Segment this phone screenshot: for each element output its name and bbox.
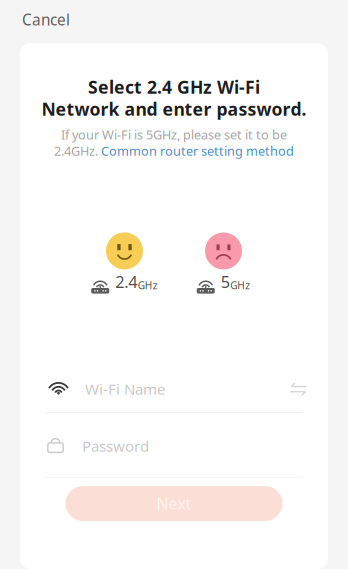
staticText: Common router setting method <box>101 142 294 159</box>
staticText: Network and enter password. <box>41 97 306 121</box>
staticText: Next <box>156 493 191 514</box>
staticText: GHz <box>138 278 158 292</box>
button[interactable]: Next <box>65 486 282 521</box>
staticText: Password <box>82 436 149 456</box>
staticText: GHz <box>230 278 250 292</box>
button[interactable]: Switch network <box>278 374 328 405</box>
button[interactable]: Common router setting method <box>101 142 294 159</box>
staticText: Cancel <box>22 9 70 30</box>
staticText: 2.4 <box>115 270 137 293</box>
staticText: Wi-Fi Name <box>85 379 165 399</box>
button[interactable]: Cancel <box>0 3 86 40</box>
staticText: If your Wi-Fi is 5GHz, please set it to … <box>61 126 287 143</box>
staticText: Select 2.4 GHz Wi-Fi <box>88 75 260 99</box>
staticText: 2.4GHz. <box>54 142 98 159</box>
staticText: 5 <box>221 270 230 293</box>
